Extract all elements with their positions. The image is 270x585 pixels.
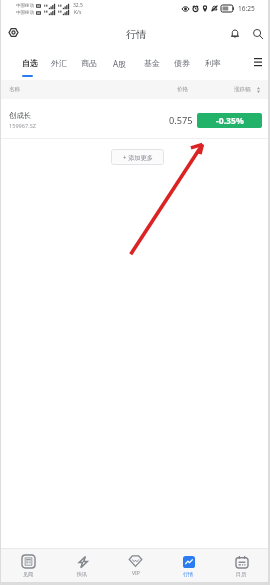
staticText: 行情: [126, 28, 147, 41]
staticText: 快讯: [77, 571, 88, 577]
button[interactable]: Notifications: [225, 24, 244, 43]
button[interactable]: 快讯: [55, 549, 109, 582]
staticText: 日历: [236, 571, 247, 577]
staticText: 16:25: [238, 4, 255, 13]
button[interactable]: 利率: [198, 47, 228, 80]
staticText: 见闻: [23, 571, 34, 577]
button[interactable]: + 添加更多: [111, 149, 164, 165]
staticText: 创成长: [9, 111, 32, 120]
button[interactable]: 自选: [15, 47, 45, 80]
staticText: 0.575: [169, 114, 193, 127]
staticText: 价格: [177, 86, 189, 93]
button[interactable]: 行情: [162, 549, 215, 582]
staticText: 行情: [183, 571, 194, 577]
button[interactable]: A股: [105, 47, 135, 80]
staticText: -0.35%: [216, 115, 244, 127]
button[interactable]: 见闻: [1, 549, 55, 582]
button[interactable]: More categories: [247, 47, 269, 80]
staticText: 债券: [174, 58, 190, 68]
staticText: 中国移动: [16, 10, 34, 16]
staticText: 159967.SZ: [9, 122, 36, 130]
staticText: 涨跌幅: [234, 86, 251, 93]
button[interactable]: Search: [248, 24, 267, 43]
staticText: 32.5: [73, 2, 83, 9]
staticText: 基金: [144, 58, 160, 68]
staticText: 利率: [205, 58, 221, 68]
button[interactable]: 基金: [137, 47, 167, 80]
button[interactable]: 商品: [74, 47, 104, 80]
button[interactable]: VIP: [109, 549, 162, 582]
staticText: 外汇: [51, 58, 67, 68]
staticText: VIP: [132, 570, 140, 577]
button[interactable]: 外汇: [44, 47, 74, 80]
button[interactable]: 创成长: [1, 99, 268, 139]
staticText: 名称: [9, 86, 21, 93]
staticText: 中国移动: [16, 3, 34, 9]
staticText: K/s: [74, 9, 82, 16]
staticText: A股: [113, 58, 127, 69]
button[interactable]: 日历: [215, 549, 268, 582]
button[interactable]: Settings: [4, 23, 22, 41]
staticText: 商品: [81, 58, 97, 68]
staticText: 自选: [22, 58, 38, 68]
staticText: + 添加更多: [123, 153, 153, 161]
button[interactable]: 债券: [167, 47, 197, 80]
